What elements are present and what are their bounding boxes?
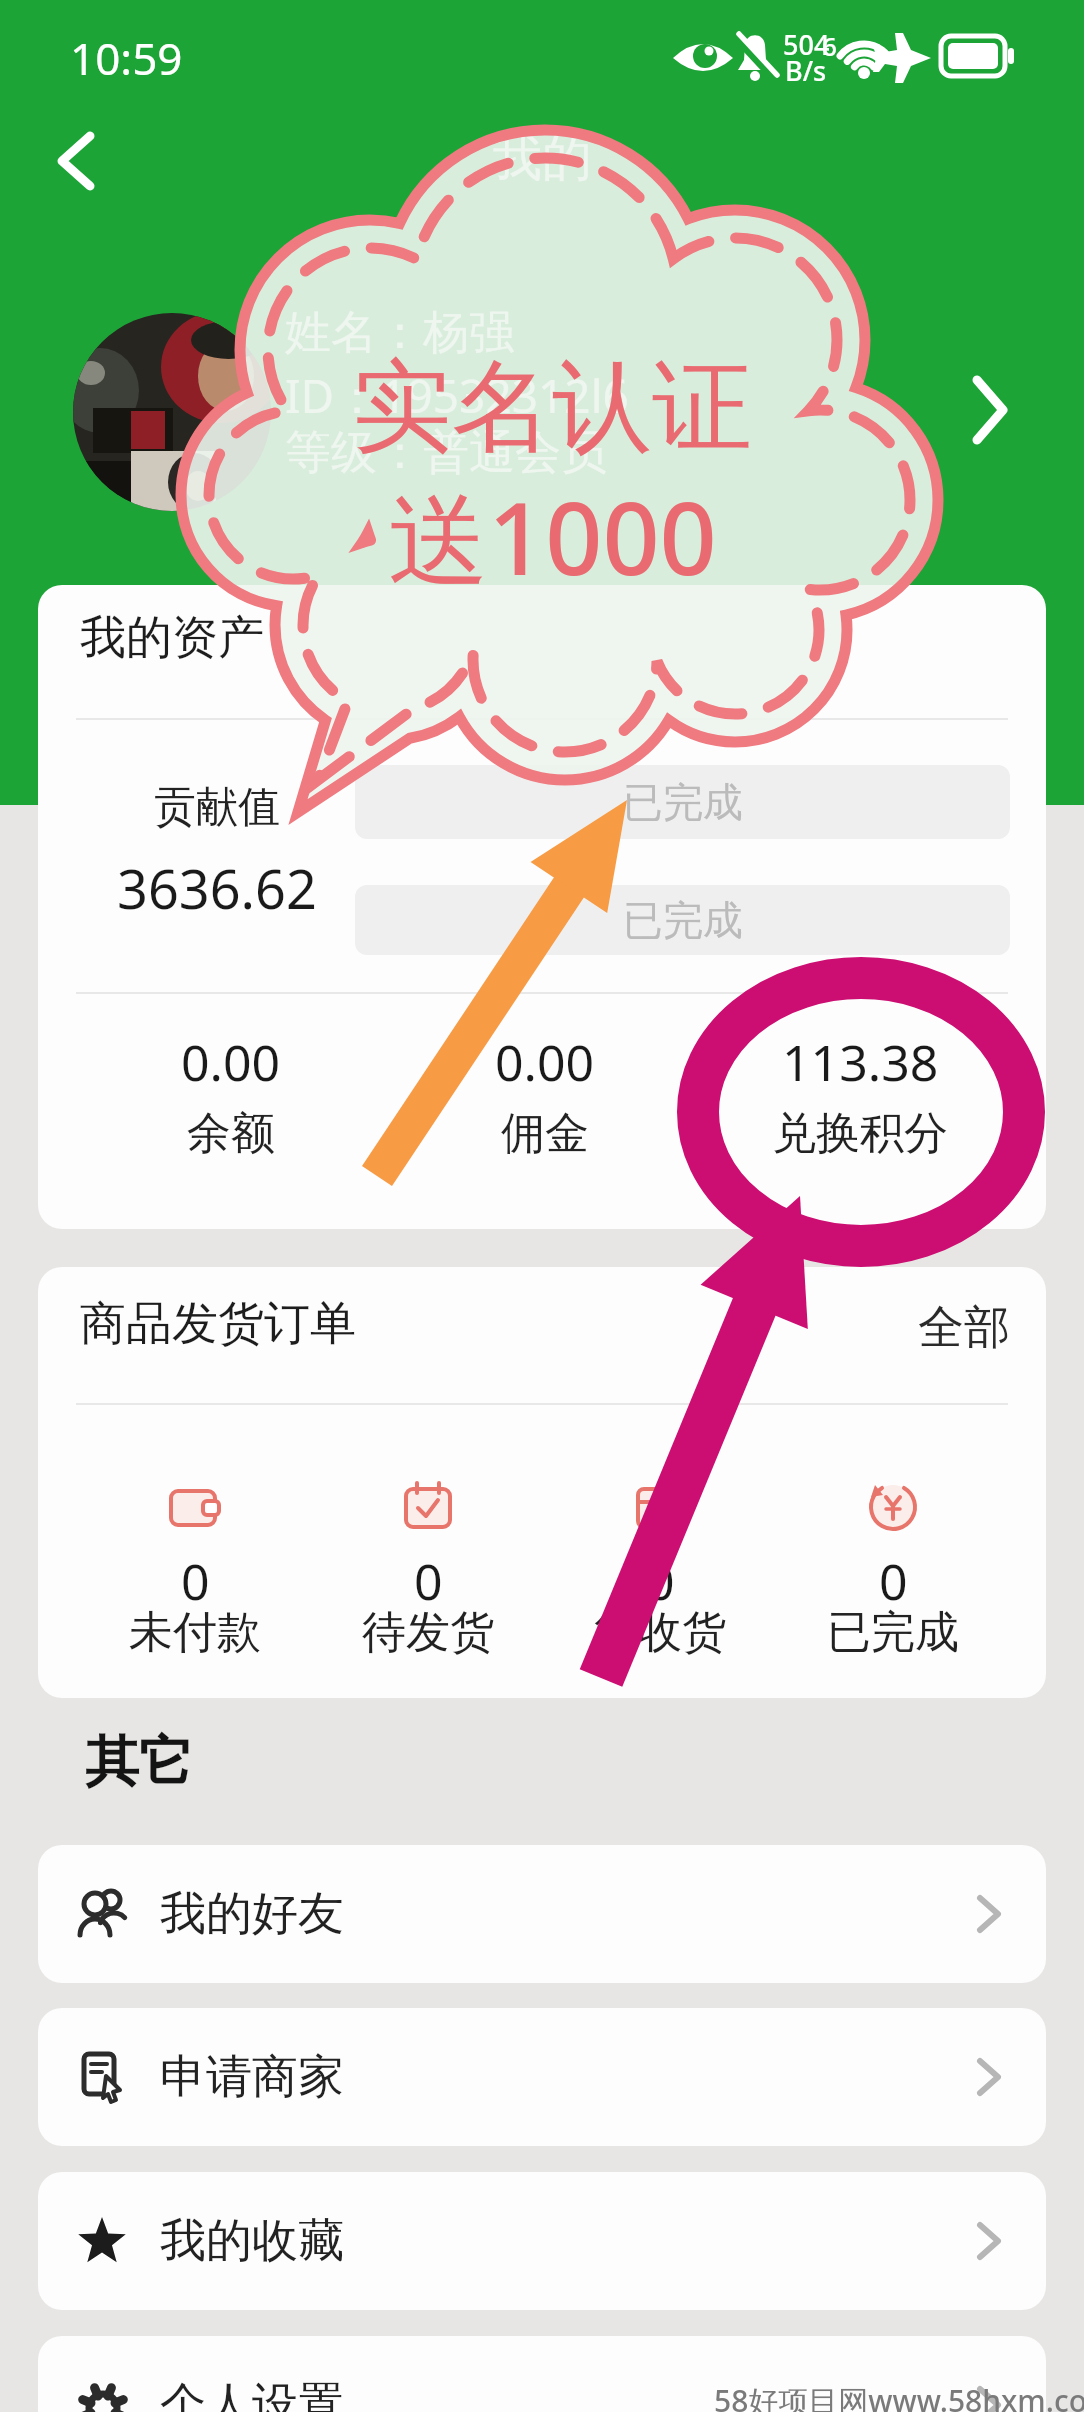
staticText: 0 xyxy=(181,1547,210,1601)
staticText: 113.38 xyxy=(782,1028,939,1096)
staticText: 其它 xyxy=(85,1728,193,1796)
button[interactable] xyxy=(955,368,1025,452)
staticText: 10:59 xyxy=(70,28,183,88)
staticText: 0 xyxy=(414,1547,443,1601)
staticText: 贡献值 xyxy=(154,781,280,834)
staticText: 实名认证 xyxy=(352,345,752,465)
staticText: 0 xyxy=(879,1547,908,1601)
staticText: 0.00 xyxy=(181,1028,281,1096)
staticText: 已完成 xyxy=(827,1605,959,1655)
button[interactable]: 已完成 xyxy=(355,885,1010,955)
staticText: 我的好友 xyxy=(160,1885,344,1943)
staticText: ID：19532312l6 xyxy=(285,364,629,427)
staticText: 个人设置 xyxy=(160,2376,344,2412)
staticText: 58好项目网www.58hxm.com xyxy=(714,2380,1084,2412)
staticText: 3636.62 xyxy=(117,851,317,923)
button[interactable]: 我的好友 xyxy=(38,1845,1046,1983)
button[interactable]: 全部 xyxy=(820,1299,1010,1351)
staticText: 等级：普通会员 xyxy=(285,424,607,482)
staticText: 申请商家 xyxy=(160,2048,344,2106)
staticText: 商品发货订单 xyxy=(80,1295,356,1353)
staticText: 我的收藏 xyxy=(160,2212,344,2270)
staticText: 0.00 xyxy=(495,1028,595,1096)
staticText: 待收货 xyxy=(594,1605,726,1655)
staticText: 佣金 xyxy=(501,1106,589,1161)
button[interactable]: 个人设置 xyxy=(38,2336,1046,2412)
staticText: 全部 xyxy=(918,1299,1010,1351)
button[interactable]: 0 xyxy=(550,1467,770,1667)
staticText: 已完成 xyxy=(623,895,743,945)
staticText: 送1000 xyxy=(388,468,717,592)
button[interactable]: 0.00 xyxy=(101,1028,361,1178)
staticText: 6 xyxy=(822,28,837,63)
staticText: 我的 xyxy=(492,127,592,190)
staticText: 姓名：杨强 xyxy=(285,304,515,362)
button[interactable]: 已完成 xyxy=(355,765,1010,839)
staticText: 504 xyxy=(783,26,830,63)
staticText: 未付款 xyxy=(129,1605,261,1655)
staticText: 兑换积分 xyxy=(772,1106,948,1161)
staticText: B/s xyxy=(785,52,827,89)
button[interactable]: 申请商家 xyxy=(38,2008,1046,2146)
button[interactable]: 0 xyxy=(85,1467,305,1667)
button[interactable] xyxy=(44,126,114,196)
staticText: 我的资产 xyxy=(80,609,264,667)
button[interactable]: 我的收藏 xyxy=(38,2172,1046,2310)
staticText: 已完成 xyxy=(623,777,743,827)
staticText: 0 xyxy=(646,1547,675,1601)
button[interactable]: 113.38 xyxy=(730,1028,990,1178)
staticText: 待发货 xyxy=(362,1605,494,1655)
staticText: 余额 xyxy=(187,1106,275,1161)
button[interactable]: 0.00 xyxy=(415,1028,675,1178)
button[interactable]: 0 xyxy=(783,1467,1003,1667)
button[interactable]: 0 xyxy=(318,1467,538,1667)
